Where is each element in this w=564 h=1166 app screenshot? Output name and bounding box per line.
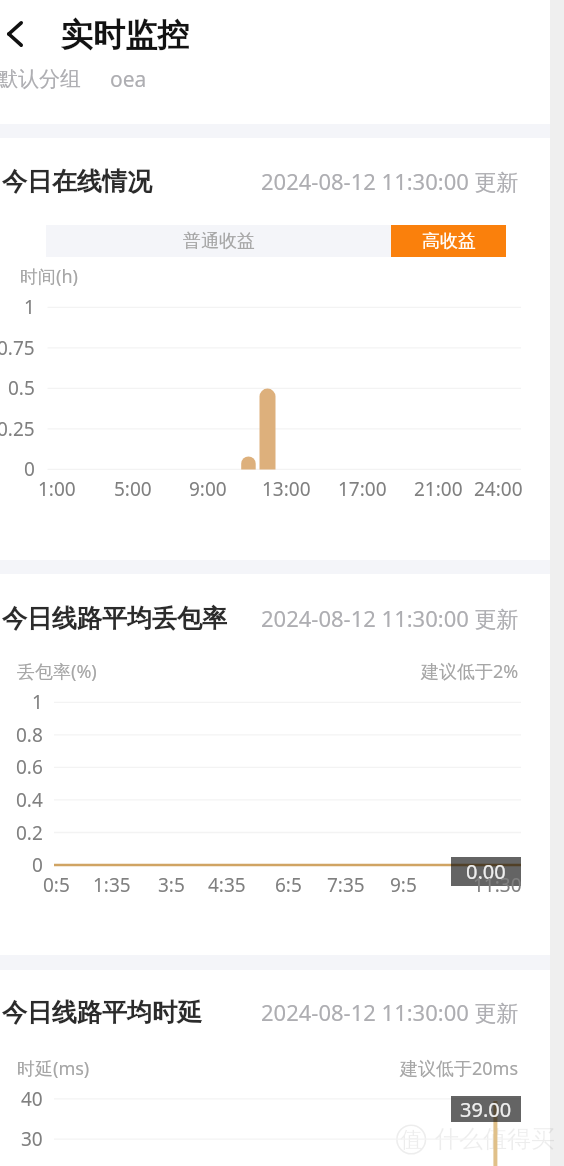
staticText: 5:00 bbox=[114, 476, 152, 502]
button[interactable]: 普通收益 bbox=[46, 225, 391, 257]
staticText: 0.2 bbox=[16, 820, 43, 846]
button[interactable]: 实时监控 bbox=[58, 8, 194, 60]
staticText: 值 bbox=[400, 1126, 422, 1154]
staticText: 2024-08-12 11:30:00 更新 bbox=[261, 166, 519, 196]
staticText: 0.4 bbox=[16, 787, 43, 813]
staticText: 9:5 bbox=[390, 872, 417, 898]
staticText: 0 bbox=[32, 852, 43, 878]
staticText: 建议低于20ms bbox=[400, 1056, 519, 1081]
staticText: 建议低于2% bbox=[421, 659, 519, 684]
staticText: 1:35 bbox=[93, 872, 131, 898]
staticText: 7:35 bbox=[327, 872, 365, 898]
staticText: 普通收益 bbox=[183, 230, 255, 253]
staticText: 实时监控 bbox=[61, 15, 189, 51]
staticText: 今日线路平均丢包率 bbox=[2, 603, 227, 634]
button[interactable]: 高收益 bbox=[391, 225, 506, 257]
staticText: 时间(h) bbox=[20, 264, 78, 289]
staticText: 30 bbox=[21, 1126, 43, 1152]
staticText: 今日线路平均时延 bbox=[2, 997, 202, 1028]
staticText: 0.6 bbox=[16, 754, 43, 780]
staticText: 2024-08-12 11:30:00 更新 bbox=[261, 603, 519, 633]
staticText: 0.00 bbox=[466, 858, 506, 885]
staticText: 40 bbox=[21, 1086, 43, 1112]
staticText: 0.25 bbox=[0, 416, 35, 442]
staticText: 什么值得买 bbox=[435, 1124, 555, 1154]
staticText: 4:35 bbox=[208, 872, 246, 898]
staticText: 高收益 bbox=[422, 230, 476, 253]
staticText: 1 bbox=[32, 689, 43, 715]
staticText: 9:00 bbox=[189, 476, 227, 502]
staticText: 今日在线情况 bbox=[2, 166, 152, 197]
staticText: 0.5 bbox=[8, 375, 35, 401]
staticText: 0.75 bbox=[0, 335, 35, 361]
staticText: 0.8 bbox=[16, 722, 43, 748]
staticText: 0:5 bbox=[43, 872, 70, 898]
staticText: 0 bbox=[24, 456, 35, 482]
staticText: 11:30 bbox=[473, 872, 522, 898]
staticText: 17:00 bbox=[338, 476, 387, 502]
staticText: 3:5 bbox=[158, 872, 185, 898]
staticText: 39.00 bbox=[460, 1096, 512, 1122]
staticText: 13:00 bbox=[262, 476, 311, 502]
staticText: oea bbox=[110, 65, 147, 94]
staticText: 21:00 bbox=[414, 476, 463, 502]
staticText: 6:5 bbox=[275, 872, 302, 898]
staticText: 丢包率(%) bbox=[17, 659, 97, 684]
staticText: 时延(ms) bbox=[17, 1056, 90, 1081]
staticText: 默认分组 bbox=[0, 66, 81, 92]
button[interactable]: Back bbox=[0, 10, 30, 58]
staticText: 2024-08-12 11:30:00 更新 bbox=[261, 997, 519, 1027]
staticText: 24:00 bbox=[474, 476, 523, 502]
staticText: 1 bbox=[24, 294, 35, 320]
staticText: 1:00 bbox=[38, 476, 76, 502]
